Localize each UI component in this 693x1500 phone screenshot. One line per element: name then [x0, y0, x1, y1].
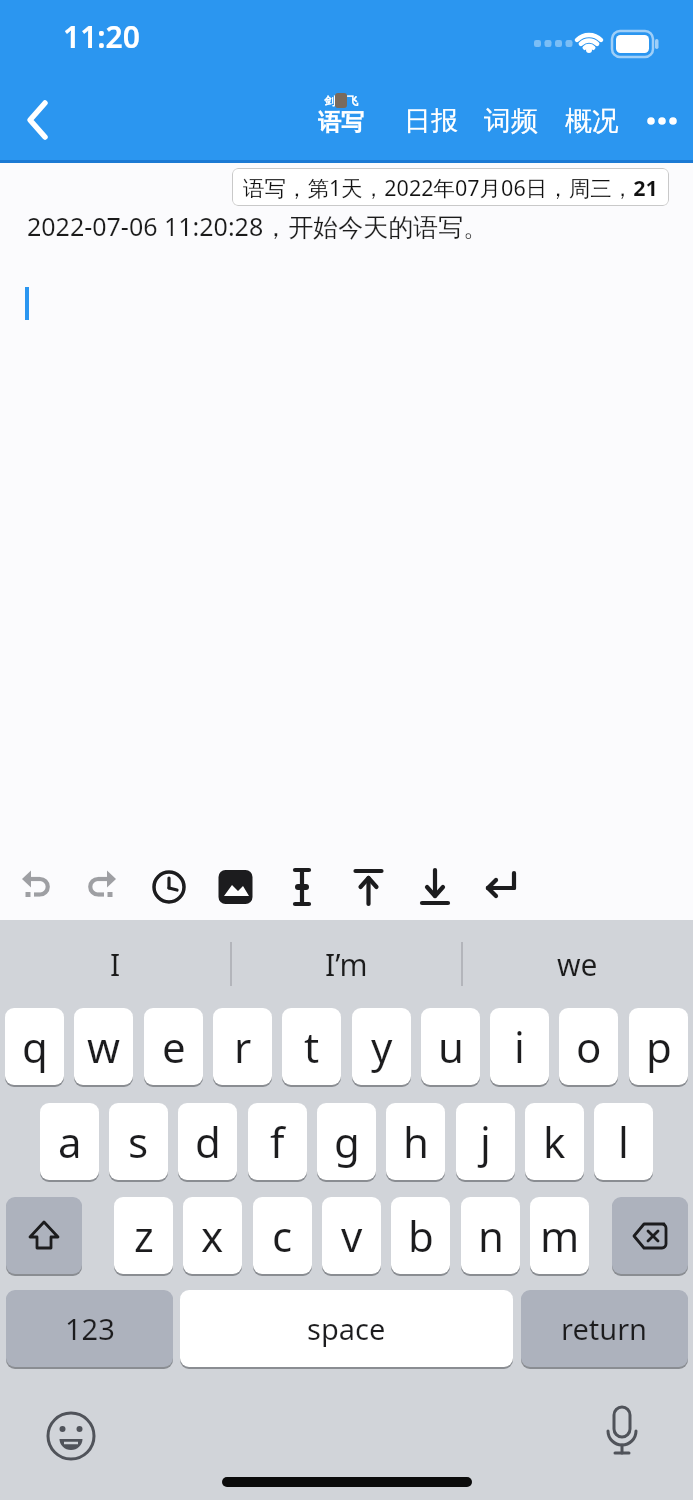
- button[interactable]: [332, 855, 399, 920]
- staticText: d: [195, 1113, 221, 1170]
- button[interactable]: 剑: [313, 93, 369, 137]
- staticText: 2022-07-06 11:20:28，开始今天的语写。: [27, 209, 489, 243]
- button[interactable]: we: [462, 920, 693, 1008]
- staticText: o: [576, 1018, 602, 1075]
- staticText: f: [270, 1113, 285, 1170]
- button[interactable]: [0, 855, 66, 920]
- staticText: h: [403, 1113, 429, 1170]
- button[interactable]: return: [521, 1290, 688, 1367]
- staticText: we: [557, 944, 598, 985]
- button[interactable]: s: [109, 1103, 168, 1180]
- button[interactable]: e: [144, 1008, 203, 1085]
- staticText: 11:20: [63, 16, 140, 57]
- staticText: a: [58, 1113, 82, 1170]
- button[interactable]: I’m: [231, 920, 462, 1008]
- button[interactable]: [265, 855, 332, 920]
- staticText: 日报: [404, 104, 458, 138]
- button[interactable]: x: [183, 1197, 242, 1274]
- button[interactable]: z: [114, 1197, 173, 1274]
- button[interactable]: j: [456, 1103, 515, 1180]
- staticText: I’m: [325, 944, 368, 985]
- button[interactable]: a: [40, 1103, 99, 1180]
- button[interactable]: p: [629, 1008, 688, 1085]
- staticText: 词频: [484, 104, 538, 138]
- staticText: space: [307, 1309, 386, 1348]
- button[interactable]: 语写，第1天，2022年07月06日，周三，21: [232, 168, 669, 206]
- staticText: y: [371, 1018, 393, 1075]
- button[interactable]: c: [253, 1197, 312, 1274]
- button[interactable]: r: [213, 1008, 272, 1085]
- staticText: p: [646, 1018, 672, 1075]
- button[interactable]: 日报: [400, 98, 461, 144]
- staticText: g: [334, 1113, 360, 1170]
- button[interactable]: l: [594, 1103, 653, 1180]
- button[interactable]: 词频: [480, 98, 541, 144]
- button[interactable]: [14, 92, 70, 148]
- staticText: n: [478, 1207, 504, 1264]
- staticText: m: [540, 1207, 580, 1264]
- staticText: u: [438, 1018, 464, 1075]
- staticText: j: [480, 1113, 491, 1170]
- button[interactable]: o: [559, 1008, 618, 1085]
- staticText: e: [162, 1018, 186, 1075]
- button[interactable]: b: [391, 1197, 450, 1274]
- staticText: v: [341, 1207, 363, 1264]
- button[interactable]: [40, 1408, 100, 1468]
- button[interactable]: 概况: [561, 98, 622, 144]
- button[interactable]: [66, 855, 132, 920]
- button[interactable]: i: [490, 1008, 549, 1085]
- staticText: k: [543, 1113, 566, 1170]
- button[interactable]: y: [352, 1008, 411, 1085]
- staticText: x: [201, 1207, 224, 1264]
- button[interactable]: u: [421, 1008, 480, 1085]
- button[interactable]: t: [282, 1008, 341, 1085]
- staticText: 语写，第1天，2022年07月06日，周三，21: [243, 173, 658, 202]
- staticText: t: [304, 1018, 320, 1075]
- staticText: return: [561, 1309, 648, 1348]
- staticText: b: [408, 1207, 434, 1264]
- button[interactable]: q: [5, 1008, 64, 1085]
- button[interactable]: [640, 96, 690, 146]
- staticText: i: [514, 1018, 525, 1075]
- button[interactable]: space: [180, 1290, 513, 1367]
- button[interactable]: v: [322, 1197, 381, 1274]
- button[interactable]: [592, 1408, 652, 1468]
- button[interactable]: [612, 1197, 688, 1274]
- staticText: s: [128, 1113, 149, 1170]
- button[interactable]: g: [317, 1103, 376, 1180]
- button[interactable]: [399, 855, 466, 920]
- staticText: q: [22, 1018, 48, 1075]
- button[interactable]: w: [74, 1008, 133, 1085]
- staticText: 123: [65, 1309, 115, 1348]
- staticText: w: [87, 1018, 121, 1075]
- button[interactable]: I: [0, 920, 231, 1008]
- staticText: r: [234, 1018, 252, 1075]
- button[interactable]: f: [248, 1103, 307, 1180]
- staticText: z: [134, 1207, 154, 1264]
- button[interactable]: [132, 855, 198, 920]
- button[interactable]: k: [525, 1103, 584, 1180]
- staticText: I: [110, 944, 121, 985]
- staticText: 剑: [324, 94, 335, 108]
- button[interactable]: [466, 855, 533, 920]
- button[interactable]: [198, 855, 265, 920]
- button[interactable]: 123: [6, 1290, 173, 1367]
- staticText: c: [272, 1207, 293, 1264]
- staticText: 飞: [347, 94, 358, 108]
- button[interactable]: n: [461, 1197, 520, 1274]
- button[interactable]: [6, 1197, 82, 1274]
- button[interactable]: m: [530, 1197, 589, 1274]
- button[interactable]: d: [178, 1103, 237, 1180]
- staticText: 语写: [318, 108, 364, 137]
- button[interactable]: h: [386, 1103, 445, 1180]
- staticText: 概况: [565, 104, 619, 138]
- staticText: l: [618, 1113, 629, 1170]
